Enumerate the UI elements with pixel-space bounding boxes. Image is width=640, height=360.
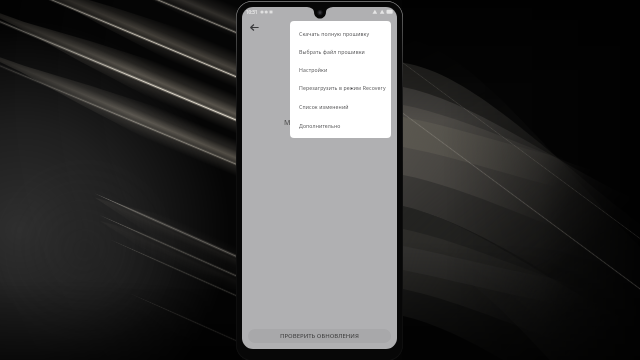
staticText: Список изменений	[299, 103, 349, 110]
button[interactable]: Перезагрузить в режим Recovery	[290, 78, 391, 97]
button[interactable]: Скачать полную прошивку	[290, 24, 391, 42]
staticText: Ме	[284, 118, 295, 128]
button[interactable]: Список изменений	[290, 97, 391, 116]
button[interactable]: Дополнительно	[290, 116, 391, 135]
staticText: Выбрать файл прошивки	[299, 48, 365, 55]
button[interactable]: ПРОВЕРИТЬ ОБНОВЛЕНИЯ	[248, 329, 391, 343]
staticText: Скачать полную прошивку	[299, 30, 370, 37]
button[interactable]: Настройки	[290, 60, 391, 78]
button[interactable]: Выбрать файл прошивки	[290, 42, 391, 60]
staticText: 10:31	[246, 9, 258, 15]
staticText: Настройки	[299, 66, 328, 73]
staticText: Дополнительно	[299, 122, 341, 129]
staticText: Перезагрузить в режим Recovery	[299, 84, 386, 91]
button[interactable]: Back	[245, 18, 263, 36]
staticText: ПРОВЕРИТЬ ОБНОВЛЕНИЯ	[280, 332, 359, 340]
